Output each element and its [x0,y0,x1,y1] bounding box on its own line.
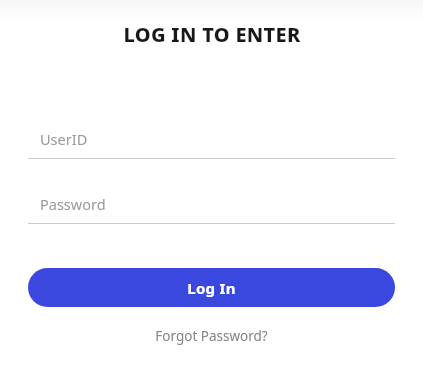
staticText: Password [40,194,106,214]
button[interactable]: Password [28,193,395,224]
staticText: LOG IN TO ENTER [123,21,301,48]
staticText: Log In [187,278,236,298]
button[interactable]: Log In [28,268,395,307]
staticText: Forgot Password? [155,327,268,345]
button[interactable]: UserID [28,128,395,159]
button[interactable]: Forgot Password? [145,324,278,348]
staticText: UserID [40,129,88,149]
